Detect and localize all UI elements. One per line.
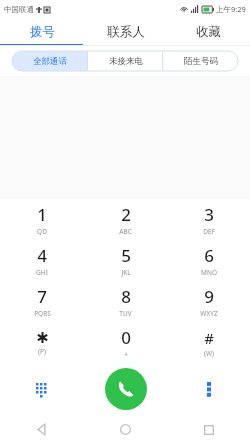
button[interactable]: 6: [167, 240, 250, 281]
staticText: 收藏: [196, 24, 221, 40]
button[interactable]: Keypad: [0, 363, 84, 415]
staticText: 2: [121, 203, 131, 226]
button[interactable]: 0: [84, 322, 167, 363]
staticText: 全部通话: [33, 56, 67, 67]
staticText: 0: [121, 326, 131, 349]
staticText: JKL: [121, 268, 131, 277]
staticText: WXYZ: [200, 309, 218, 318]
staticText: (P): [38, 347, 46, 356]
button[interactable]: 3: [167, 199, 250, 240]
staticText: PQRS: [34, 309, 51, 318]
staticText: 5: [121, 244, 131, 267]
button[interactable]: 全部通话: [12, 51, 88, 71]
button[interactable]: 4: [0, 240, 84, 281]
staticText: 未接来电: [109, 56, 143, 67]
staticText: 1: [37, 203, 47, 226]
button[interactable]: 2: [84, 199, 167, 240]
staticText: GHI: [36, 268, 48, 277]
staticText: 联系人: [107, 24, 145, 40]
staticText: (W): [204, 349, 214, 358]
staticText: 中国联通: [4, 5, 34, 14]
button[interactable]: Recents: [167, 415, 250, 444]
staticText: 7: [37, 285, 47, 308]
staticText: 陌生号码: [184, 56, 218, 67]
button[interactable]: 陌生号码: [163, 51, 238, 71]
button[interactable]: 收藏: [167, 18, 250, 46]
button[interactable]: 拨号: [0, 18, 84, 46]
button[interactable]: 8: [84, 281, 167, 322]
staticText: 3: [204, 203, 214, 226]
staticText: #: [204, 328, 214, 348]
button[interactable]: Home: [84, 415, 167, 444]
staticText: 上午9:29: [216, 4, 246, 14]
staticText: ✱: [36, 329, 49, 346]
staticText: 6: [204, 244, 214, 267]
button[interactable]: #: [167, 322, 250, 363]
staticText: TUV: [119, 309, 132, 318]
button[interactable]: Back: [0, 415, 84, 444]
button[interactable]: Call: [105, 368, 147, 410]
button[interactable]: 7: [0, 281, 84, 322]
button[interactable]: ✱: [0, 322, 84, 363]
staticText: DEF: [203, 227, 215, 236]
staticText: 9: [204, 285, 214, 308]
button[interactable]: More options: [167, 363, 250, 415]
button[interactable]: 5: [84, 240, 167, 281]
staticText: ABC: [119, 227, 132, 236]
staticText: 拨号: [30, 24, 55, 40]
button[interactable]: 1: [0, 199, 84, 240]
staticText: 8: [121, 285, 131, 308]
staticText: MNO: [201, 268, 217, 277]
staticText: QD: [37, 227, 47, 236]
button[interactable]: 未接来电: [88, 51, 163, 71]
staticText: +: [124, 350, 128, 359]
button[interactable]: 联系人: [84, 18, 167, 46]
staticText: 4: [37, 244, 47, 267]
button[interactable]: 9: [167, 281, 250, 322]
